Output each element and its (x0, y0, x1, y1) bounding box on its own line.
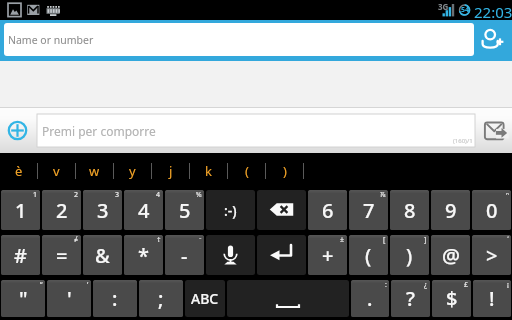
staticText: $ (446, 285, 458, 312)
staticText: 5 (179, 197, 191, 224)
button[interactable]: 3 (83, 190, 122, 230)
button[interactable]: y (114, 153, 151, 188)
staticText: Premi per comporre (42, 123, 156, 139)
button[interactable]: Attach (2, 115, 33, 146)
staticText: : (112, 285, 118, 312)
button[interactable]: @ (431, 235, 470, 275)
button[interactable]: & (83, 235, 122, 275)
staticText: ; (158, 285, 164, 312)
staticText: ¡ (507, 280, 509, 290)
button[interactable]: ( (349, 235, 388, 275)
button[interactable]: ( (228, 153, 265, 188)
staticText: 0 (486, 197, 498, 224)
staticText: * (138, 242, 149, 269)
staticText: k (205, 162, 212, 180)
staticText: 9 (445, 197, 457, 224)
button[interactable]: Premi per comporre (37, 114, 475, 147)
button[interactable]: mic (206, 235, 255, 275)
button[interactable]: * (124, 235, 163, 275)
button[interactable]: Add recipient (474, 20, 512, 61)
staticText: > (486, 242, 498, 269)
button[interactable]: Send message (477, 115, 510, 148)
button[interactable]: k (190, 153, 227, 188)
staticText: [ (383, 235, 386, 245)
staticText: ¿ (424, 280, 428, 290)
staticText: & (95, 242, 110, 269)
staticText: 54 (461, 5, 470, 15)
button[interactable]: . (351, 280, 389, 317)
button[interactable]: # (1, 235, 40, 275)
staticText: ( (245, 162, 249, 180)
button[interactable]: Name or number (4, 23, 474, 56)
staticText: ≠ (74, 235, 79, 245)
staticText: è (15, 162, 23, 180)
button[interactable]: $ (432, 280, 471, 317)
button[interactable]: j (152, 153, 189, 188)
staticText: † (157, 235, 161, 245)
staticText: " (19, 285, 28, 312)
button[interactable]: 1 (1, 190, 40, 230)
button[interactable]: 4 (124, 190, 163, 230)
button[interactable]: 2 (42, 190, 81, 230)
button[interactable]: " (1, 280, 45, 317)
staticText: + (322, 242, 334, 269)
button[interactable]: è (0, 153, 37, 188)
staticText: ! (489, 285, 495, 312)
staticText: ABC (191, 289, 219, 308)
staticText: ' (67, 285, 72, 312)
staticText: ) (406, 242, 413, 269)
button[interactable]: ! (473, 280, 511, 317)
button[interactable]: > (472, 235, 511, 275)
staticText: 4 (138, 197, 150, 224)
staticText: ⅝ (196, 190, 202, 200)
staticText: 1 (15, 197, 27, 224)
button[interactable]: - (165, 235, 204, 275)
staticText: : (385, 280, 387, 290)
button[interactable]: + (308, 235, 347, 275)
button[interactable]: ABC (185, 280, 225, 317)
button[interactable]: 9 (431, 190, 470, 230)
staticText: 8 (404, 197, 416, 224)
staticText: - (181, 242, 188, 269)
staticText: 4 (156, 190, 161, 200)
staticText: ? (406, 285, 415, 312)
button[interactable]: ) (390, 235, 429, 275)
button[interactable]: ? (391, 280, 430, 317)
button[interactable]: enter (257, 235, 306, 275)
staticText: @ (442, 242, 460, 269)
button[interactable]: 5 (165, 190, 204, 230)
button[interactable]: 0 (472, 190, 511, 230)
staticText: . (367, 285, 373, 312)
button[interactable]: ) (266, 153, 303, 188)
button[interactable]: = (42, 235, 81, 275)
staticText: 2 (74, 190, 79, 200)
button[interactable]: ; (139, 280, 183, 317)
staticText: 3G (438, 1, 449, 12)
button[interactable]: space (227, 280, 349, 317)
staticText: 7 (363, 197, 375, 224)
staticText: 22:03 (474, 2, 512, 22)
staticText: v (53, 162, 60, 180)
button[interactable]: : (93, 280, 137, 317)
staticText: “ (40, 280, 43, 290)
staticText: j (169, 162, 173, 180)
button[interactable]: 7 (349, 190, 388, 230)
staticText: (160)/1 (453, 137, 473, 145)
staticText: 1 (33, 190, 38, 200)
button[interactable]: w (76, 153, 113, 188)
staticText: ‘ (87, 280, 89, 290)
button[interactable]: 6 (308, 190, 347, 230)
staticText: ˂ (507, 235, 509, 245)
staticText: # (14, 242, 27, 269)
button[interactable]: ' (47, 280, 91, 317)
staticText: 3 (115, 190, 120, 200)
staticText: ) (283, 162, 287, 180)
button[interactable]: del (257, 190, 306, 230)
staticText: :-) (224, 201, 237, 220)
staticText: ⁿ (506, 190, 509, 200)
button[interactable]: :-) (206, 190, 255, 230)
staticText: = (56, 242, 68, 269)
button[interactable]: v (38, 153, 75, 188)
button[interactable]: 8 (390, 190, 429, 230)
staticText: 3 (97, 197, 109, 224)
